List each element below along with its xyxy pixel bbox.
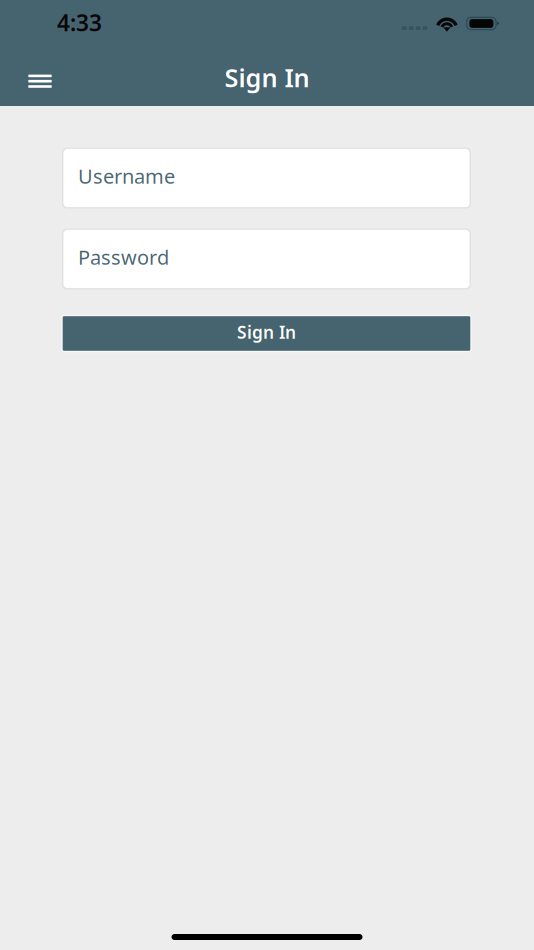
staticText: 4:33 [57, 7, 102, 37]
staticText: Password [78, 244, 169, 270]
staticText: Username [78, 163, 175, 189]
button[interactable]: Password [62, 228, 471, 289]
staticText: Sign In [237, 320, 296, 343]
button[interactable]: Sign In [62, 315, 471, 351]
button[interactable]: Menu [14, 54, 66, 106]
staticText: Sign In [224, 61, 309, 94]
button[interactable]: Username [62, 147, 471, 208]
